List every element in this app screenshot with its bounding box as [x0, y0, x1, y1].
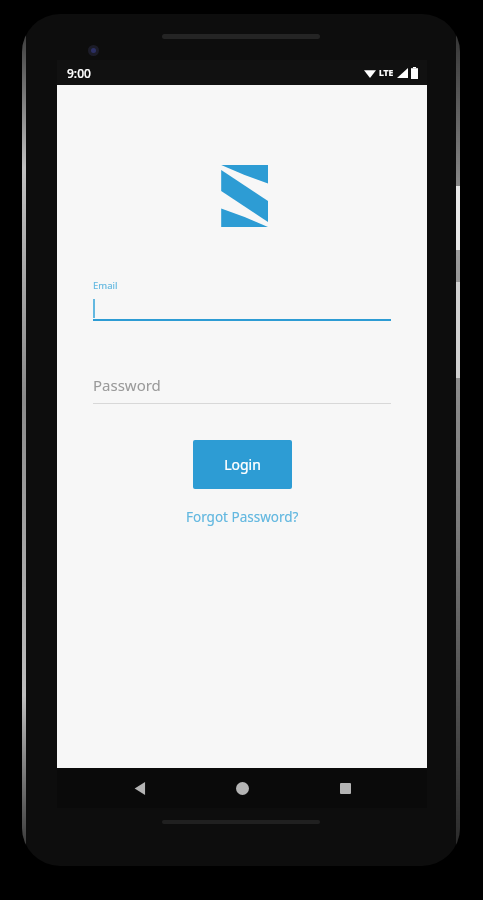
staticText: Email	[93, 279, 118, 292]
staticText: LTE	[379, 67, 394, 79]
button[interactable]: Recent apps	[325, 768, 365, 808]
staticText: Password	[93, 375, 161, 395]
staticText: Forgot Password?	[186, 508, 299, 526]
button[interactable]: Home	[222, 768, 262, 808]
button[interactable]: Forgot Password?	[176, 503, 309, 531]
button[interactable]: Email	[93, 279, 391, 321]
staticText: Login	[224, 455, 261, 474]
button[interactable]: Login	[193, 440, 292, 489]
staticText: 9:00	[67, 65, 91, 81]
button[interactable]: Password	[93, 375, 391, 404]
button[interactable]: Back	[120, 768, 160, 808]
